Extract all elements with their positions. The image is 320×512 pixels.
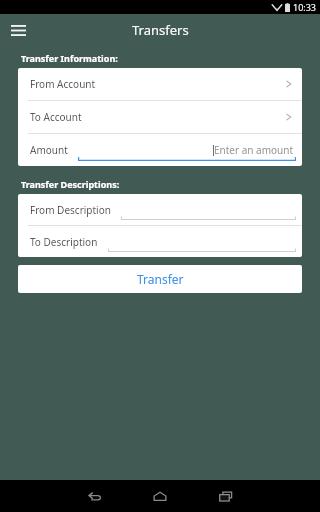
button[interactable]: To Account xyxy=(18,101,302,133)
staticText: Transfers xyxy=(132,21,189,39)
button[interactable]: To Description xyxy=(18,226,302,257)
staticText: From Account xyxy=(30,77,286,91)
staticText: Amount xyxy=(30,143,68,157)
staticText: To Account xyxy=(30,110,286,124)
button[interactable]: Home xyxy=(127,480,193,512)
button[interactable]: From Description xyxy=(18,194,302,225)
button[interactable]: Transfer xyxy=(18,265,302,293)
button[interactable]: Recent apps xyxy=(193,480,259,512)
staticText: From Description xyxy=(30,203,111,217)
staticText: Transfer Descriptions: xyxy=(21,178,120,190)
button[interactable]: Back xyxy=(61,480,127,512)
staticText: Enter an amount xyxy=(214,143,294,157)
staticText: Transfer Information: xyxy=(21,52,118,64)
button[interactable]: Amount xyxy=(18,134,302,166)
staticText: 10:33 xyxy=(293,1,317,13)
staticText: To Description xyxy=(30,235,98,249)
staticText: Transfer xyxy=(137,271,184,287)
button[interactable]: Open navigation menu xyxy=(4,16,32,44)
button[interactable]: From Account xyxy=(18,68,302,100)
